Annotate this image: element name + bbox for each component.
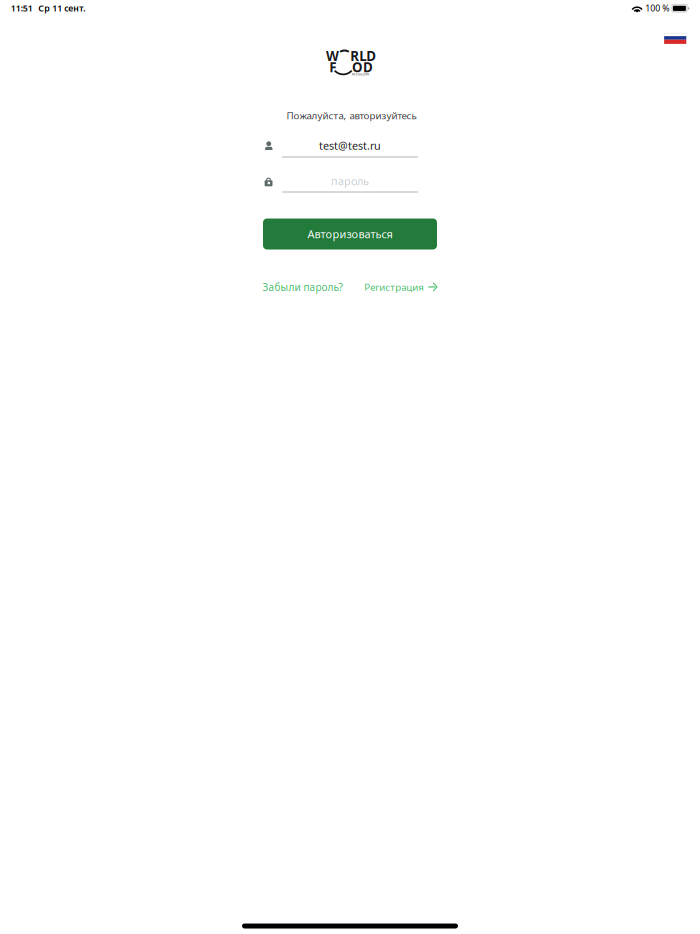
button[interactable]: Авторизоваться — [263, 218, 437, 249]
staticText: F — [329, 58, 336, 76]
staticText: Забыли пароль? — [262, 280, 342, 294]
staticText: OD — [352, 58, 373, 76]
button[interactable]: Забыли пароль? — [261, 280, 343, 294]
staticText: RLD — [350, 47, 376, 65]
staticText: MOSCOW — [352, 71, 370, 77]
staticText: Ср 11 сент. — [38, 2, 85, 14]
staticText: 100 % — [645, 2, 669, 14]
button[interactable]: Регистрация — [364, 280, 438, 294]
staticText: Авторизоваться — [307, 226, 392, 241]
staticText: Пожалуйста, авторизуйтесь — [286, 109, 416, 122]
staticText: пароль — [331, 174, 369, 188]
staticText: 11:51 — [11, 2, 33, 14]
staticText: Регистрация — [364, 280, 424, 294]
staticText: W — [326, 47, 339, 65]
staticText: test@test.ru — [319, 138, 381, 153]
button[interactable]: Выбрать язык — [664, 33, 686, 44]
